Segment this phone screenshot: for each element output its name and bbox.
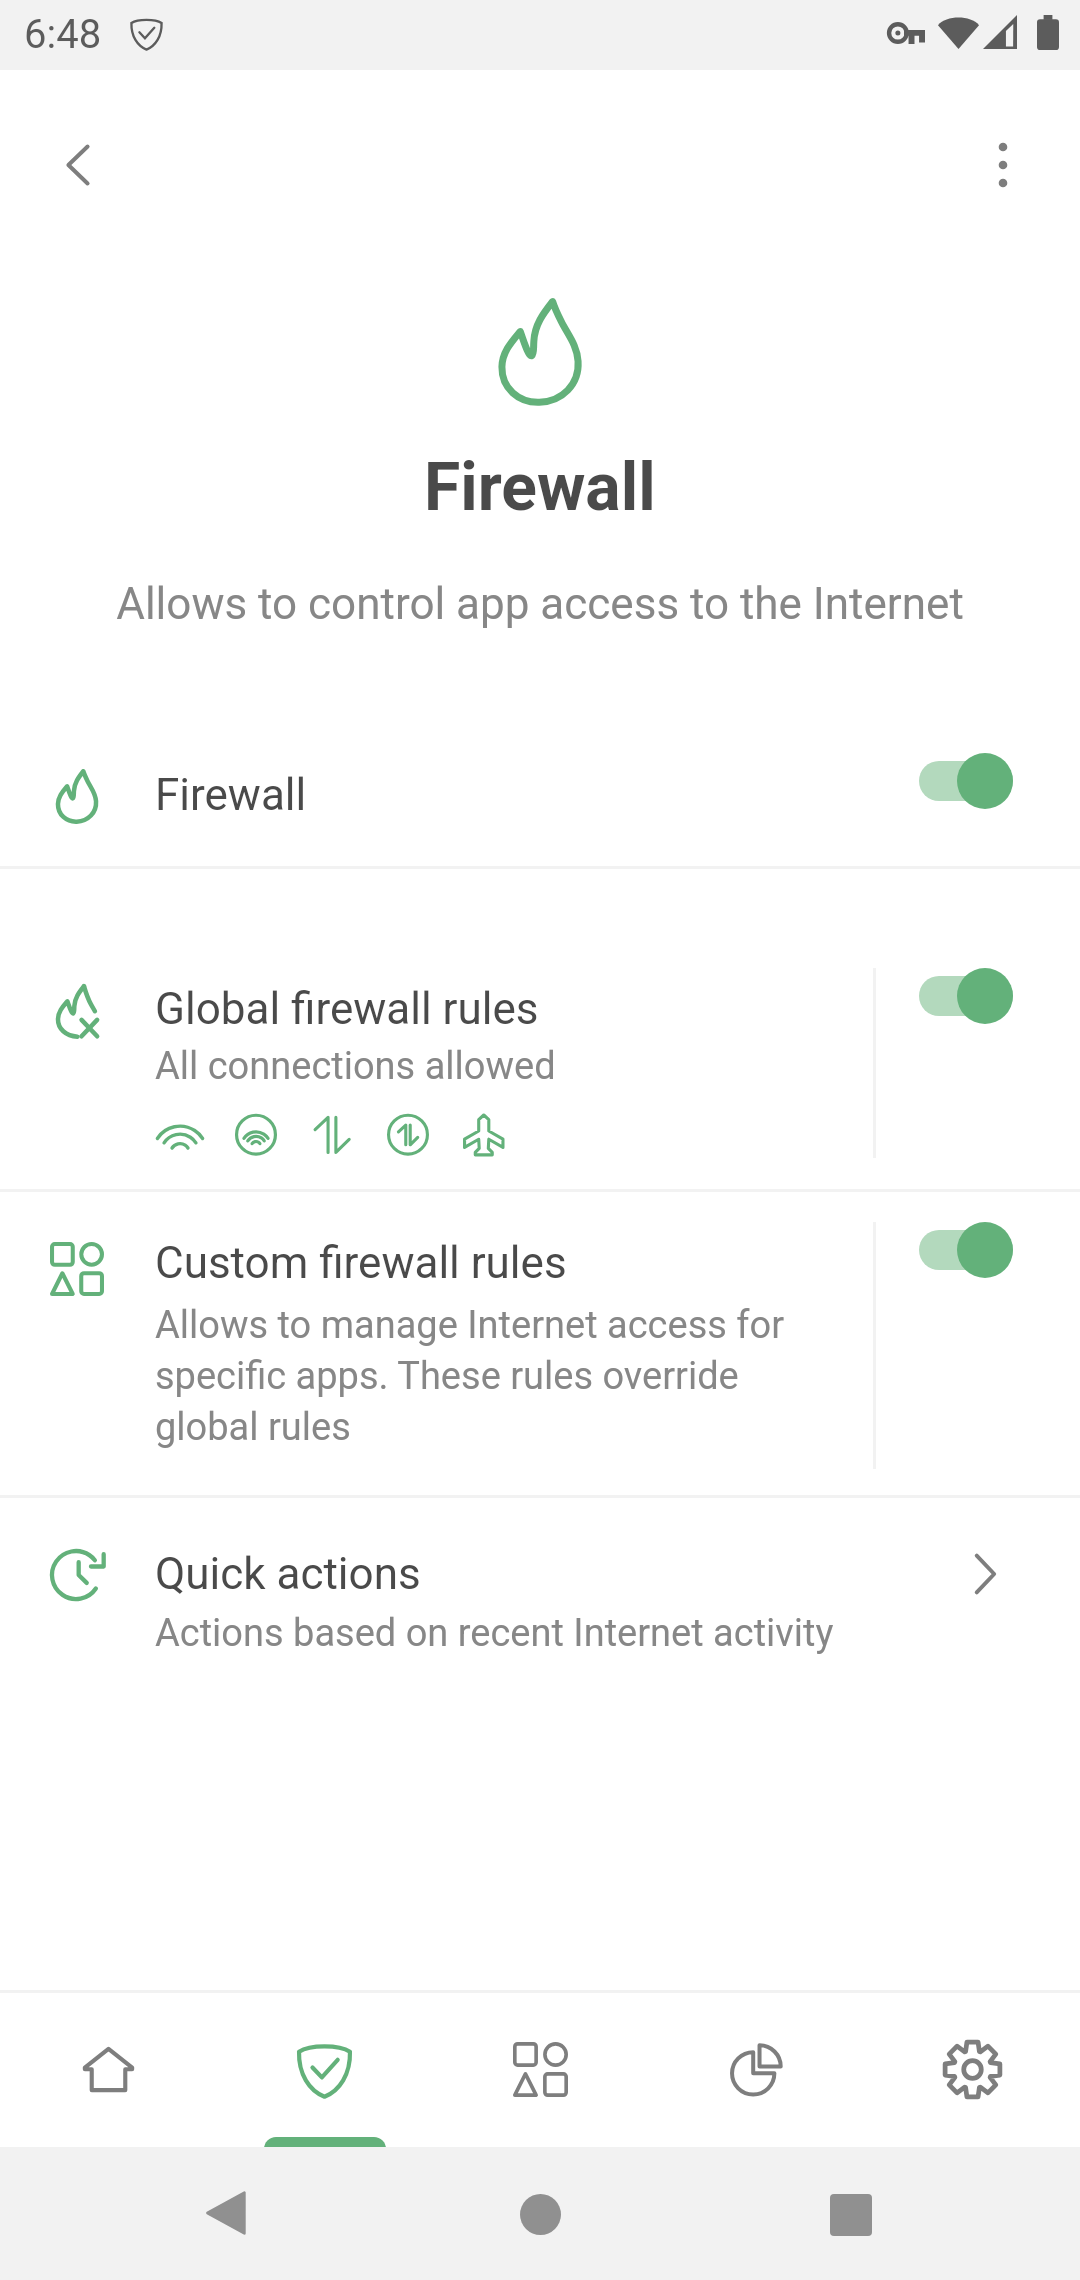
staticText: Actions based on recent Internet activit… bbox=[155, 1611, 834, 1656]
button[interactable]: More options bbox=[951, 113, 1055, 217]
staticText: All connections allowed bbox=[155, 1044, 556, 1089]
button[interactable] bbox=[0, 869, 1080, 1189]
button[interactable]: Statistics bbox=[648, 1993, 864, 2147]
button[interactable]: Toggle bbox=[907, 954, 1031, 1038]
button[interactable]: Protection bbox=[216, 1993, 432, 2147]
button[interactable] bbox=[0, 700, 1080, 866]
button[interactable] bbox=[0, 1192, 1080, 1495]
staticText: Firewall bbox=[424, 449, 656, 526]
button[interactable]: Back bbox=[206, 2191, 246, 2235]
staticText: Allows to manage Internet access for spe… bbox=[155, 1303, 785, 1450]
staticText: Custom firewall rules bbox=[155, 1237, 567, 1289]
button[interactable]: Toggle bbox=[907, 1208, 1031, 1292]
button[interactable]: Toggle bbox=[907, 739, 1031, 823]
button[interactable]: Home bbox=[0, 1993, 216, 2147]
staticText: Global firewall rules bbox=[155, 983, 539, 1035]
staticText: Quick actions bbox=[155, 1548, 421, 1600]
button[interactable]: Recent apps bbox=[830, 2194, 872, 2236]
button[interactable] bbox=[0, 1498, 1080, 1698]
button[interactable]: Apps bbox=[432, 1993, 648, 2147]
button[interactable]: Navigate up bbox=[26, 113, 130, 217]
button[interactable]: Settings bbox=[864, 1993, 1080, 2147]
staticText: Firewall bbox=[155, 769, 307, 821]
staticText: 6:48 bbox=[24, 11, 102, 58]
button[interactable]: Home bbox=[520, 2194, 561, 2235]
staticText: Allows to control app access to the Inte… bbox=[116, 578, 964, 630]
